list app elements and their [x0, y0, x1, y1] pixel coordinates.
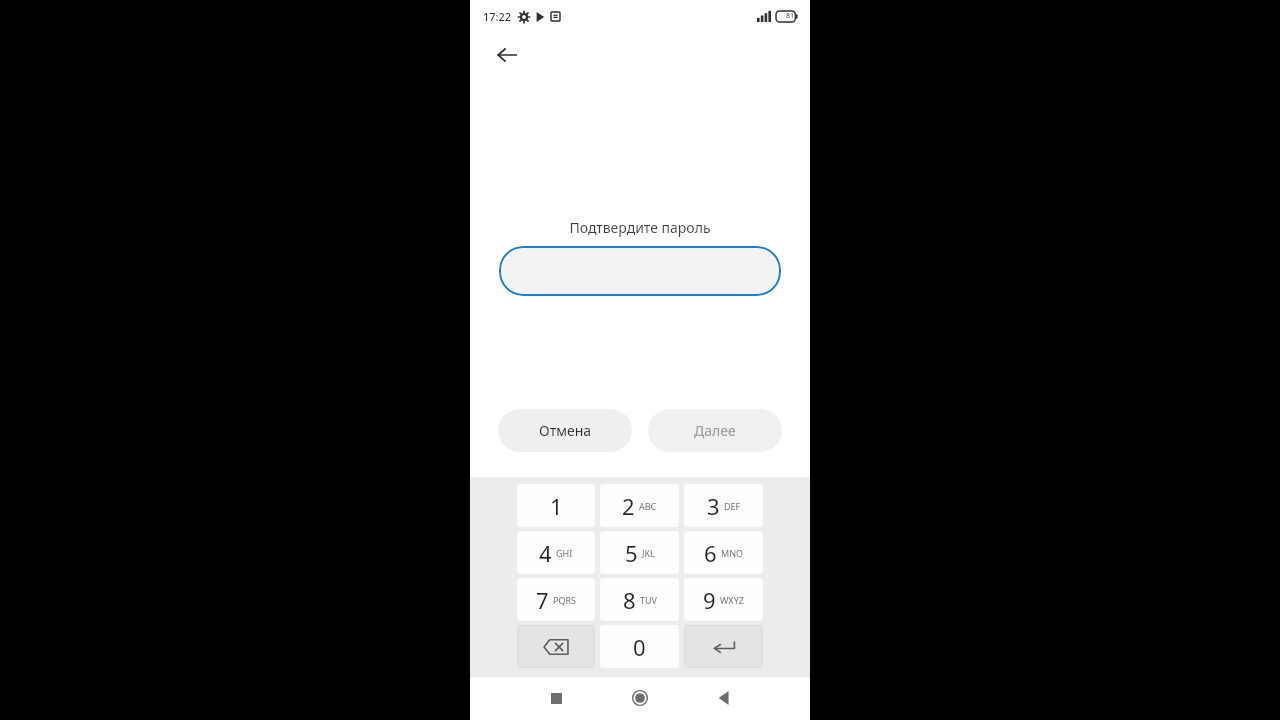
staticText: 9 — [703, 585, 716, 615]
staticText: 8 — [623, 585, 636, 615]
button[interactable]: 7 — [517, 578, 595, 621]
button[interactable]: Recents — [538, 680, 574, 716]
staticText: 17:22 — [483, 9, 512, 24]
staticText: 5 — [625, 538, 638, 568]
button[interactable]: Password input — [499, 246, 781, 296]
staticText: WXYZ — [720, 594, 744, 606]
button[interactable]: Enter — [684, 625, 763, 668]
button[interactable]: 6 — [684, 531, 763, 574]
staticText: 0 — [633, 632, 646, 662]
button[interactable]: Back — [706, 680, 742, 716]
staticText: GHI — [556, 547, 573, 559]
staticText: DEF — [724, 500, 741, 512]
staticText: 6 — [704, 538, 717, 568]
staticText: 4 — [539, 538, 552, 568]
button[interactable]: Backspace — [517, 625, 595, 668]
button[interactable]: Back — [492, 40, 522, 70]
button[interactable]: 0 — [600, 625, 679, 668]
button[interactable]: Отмена — [498, 409, 632, 452]
staticText: Подтвердите пароль — [569, 218, 711, 237]
staticText: MNO — [721, 547, 744, 559]
staticText: Отмена — [539, 421, 592, 440]
button[interactable]: 1 — [517, 484, 595, 527]
button[interactable]: Home — [622, 680, 658, 716]
button[interactable]: 3 — [684, 484, 763, 527]
button[interactable]: Далее — [648, 409, 782, 452]
button[interactable]: 2 — [600, 484, 679, 527]
staticText: 3 — [707, 491, 720, 521]
staticText: 1 — [550, 491, 563, 521]
staticText: ABC — [639, 500, 657, 512]
staticText: JKL — [642, 547, 655, 559]
button[interactable]: 4 — [517, 531, 595, 574]
staticText: 2 — [622, 491, 635, 521]
button[interactable]: 5 — [600, 531, 679, 574]
staticText: 81 — [786, 11, 795, 21]
staticText: 7 — [536, 585, 549, 615]
staticText: TUV — [640, 594, 657, 606]
button[interactable]: 8 — [600, 578, 679, 621]
button[interactable]: 9 — [684, 578, 763, 621]
staticText: Далее — [694, 421, 736, 440]
staticText: PQRS — [553, 594, 577, 606]
